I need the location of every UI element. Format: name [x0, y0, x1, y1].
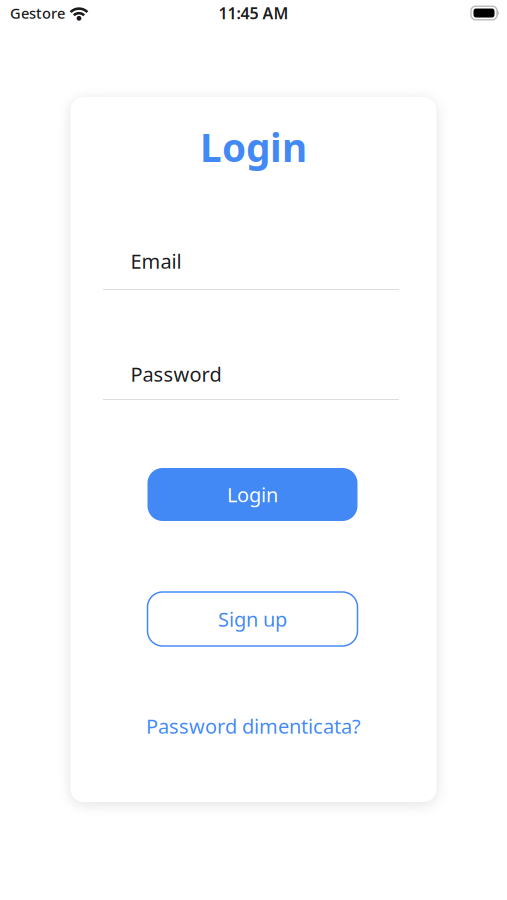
staticText: Sign up — [218, 606, 287, 632]
staticText: Login — [200, 121, 307, 173]
button[interactable]: Password dimenticata? — [146, 713, 361, 739]
staticText: 11:45 AM — [218, 2, 288, 24]
staticText: Password — [130, 361, 221, 387]
button[interactable]: Sign up — [147, 592, 357, 646]
staticText: Gestore — [10, 3, 65, 23]
staticText: Password dimenticata? — [146, 713, 361, 739]
staticText: Email — [130, 248, 181, 274]
staticText: Login — [227, 481, 278, 508]
button[interactable]: Login — [147, 468, 357, 521]
